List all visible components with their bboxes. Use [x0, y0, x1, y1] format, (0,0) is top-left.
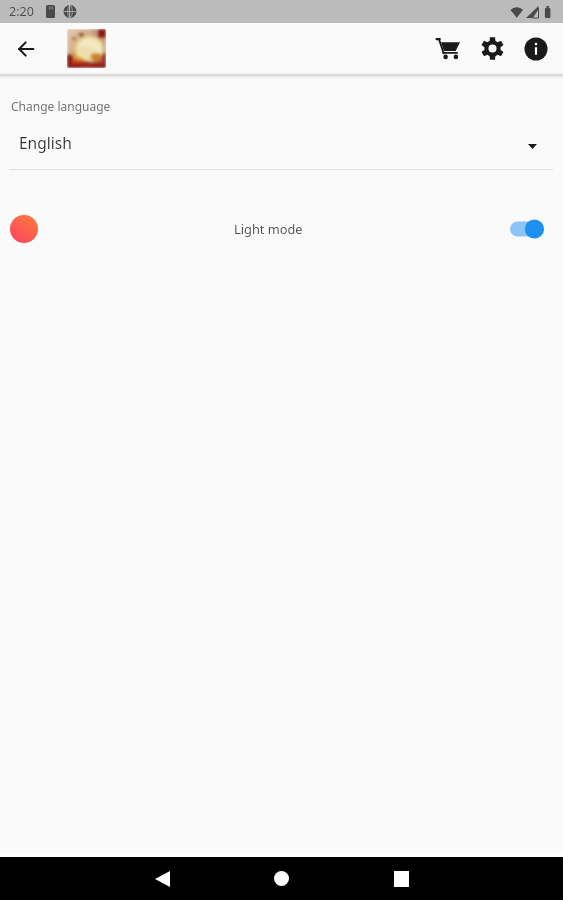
button[interactable]: Recents	[373, 863, 429, 894]
button[interactable]: Back	[134, 863, 190, 894]
button[interactable]	[510, 219, 544, 239]
button[interactable]: Cart	[423, 24, 471, 72]
staticText: Light mode	[234, 220, 303, 237]
staticText: Change language	[11, 98, 111, 114]
button[interactable]: English	[0, 120, 563, 164]
staticText: 2:20	[9, 3, 34, 20]
button[interactable]: Logo	[67, 29, 106, 68]
button[interactable]: Info	[514, 27, 557, 70]
button[interactable]: Settings	[471, 27, 514, 70]
button[interactable]: Home	[253, 863, 309, 894]
button[interactable]: Back	[0, 23, 52, 73]
staticText: English	[19, 132, 72, 153]
